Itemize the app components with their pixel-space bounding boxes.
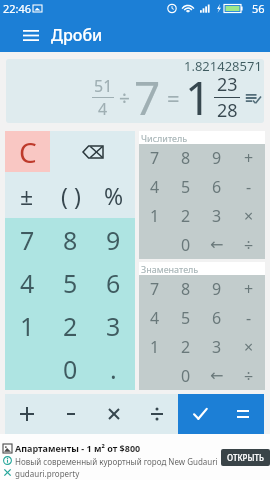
staticText: +	[244, 278, 254, 300]
staticText: 3	[106, 309, 121, 343]
button[interactable]: 2	[170, 201, 201, 230]
button[interactable]: Equals	[221, 394, 264, 434]
button[interactable]: 6	[92, 261, 135, 304]
button[interactable]: 5	[49, 261, 92, 304]
button[interactable]: 1	[139, 201, 170, 230]
staticText: 5	[181, 176, 191, 198]
staticText: +	[244, 147, 254, 169]
staticText: 9	[212, 147, 222, 169]
staticText: 7	[134, 66, 161, 123]
staticText: ÷	[244, 365, 254, 387]
staticText: ×	[244, 336, 254, 358]
button[interactable]: %	[92, 172, 135, 218]
button[interactable]: 8	[170, 144, 201, 172]
staticText: 0	[181, 234, 191, 256]
staticText: 4	[98, 98, 108, 120]
button[interactable]: 9	[92, 218, 135, 261]
staticText: 7	[20, 223, 35, 257]
button[interactable]: C	[5, 131, 50, 172]
button[interactable]: 5	[170, 172, 201, 201]
button[interactable]: +	[233, 275, 265, 303]
button[interactable]: 3	[92, 304, 135, 347]
button[interactable]: +	[233, 144, 265, 172]
staticText: 5	[63, 266, 78, 300]
button[interactable]: 9	[201, 144, 233, 172]
button[interactable]: 6	[201, 172, 233, 201]
staticText: -	[246, 176, 252, 198]
button[interactable]: div	[135, 394, 178, 434]
staticText: 6	[212, 176, 222, 198]
button[interactable]: Apply	[178, 394, 221, 434]
button[interactable]: ÷	[233, 361, 265, 390]
staticText: Апартаменты - 1 м² от $800	[15, 442, 141, 454]
button[interactable]: ×	[233, 332, 265, 361]
button[interactable]: ±	[5, 172, 49, 218]
button[interactable]: 4	[139, 172, 170, 201]
button[interactable]: ×	[233, 201, 265, 230]
button[interactable]: ÷	[233, 230, 265, 259]
staticText: ×	[244, 205, 254, 227]
staticText: 0	[63, 352, 78, 386]
button[interactable]: 2	[170, 332, 201, 361]
staticText: ÷	[119, 85, 130, 111]
button[interactable]: Menu	[18, 22, 44, 48]
button[interactable]: -	[233, 303, 265, 332]
button[interactable]: 0	[170, 230, 201, 259]
button[interactable]: times	[92, 394, 135, 434]
button[interactable]: 4	[5, 261, 49, 304]
button[interactable]: 8	[170, 275, 201, 303]
button[interactable]: .	[92, 347, 135, 390]
button[interactable]: 7	[139, 144, 170, 172]
staticText: C	[19, 133, 37, 171]
staticText: 2	[181, 336, 191, 358]
staticText: ←	[210, 366, 224, 385]
button[interactable]: ←	[201, 230, 233, 259]
button[interactable]: 7	[5, 218, 49, 261]
button[interactable]: 2	[49, 304, 92, 347]
staticText: gudauri.property	[15, 468, 80, 479]
staticText: ÷	[244, 234, 254, 256]
button[interactable]: ←	[201, 361, 233, 390]
staticText: ←	[210, 235, 224, 254]
button[interactable]: 6	[201, 303, 233, 332]
button[interactable]: 1	[139, 332, 170, 361]
staticText: ОТКРЫТЬ	[227, 452, 264, 463]
staticText: %	[104, 180, 124, 211]
staticText: 1.821428571	[184, 59, 262, 75]
staticText: 9	[106, 223, 121, 257]
button[interactable]: 4	[139, 303, 170, 332]
button[interactable]: 0	[170, 361, 201, 390]
staticText: 8	[181, 278, 191, 300]
button[interactable]: 8	[49, 218, 92, 261]
staticText: 1	[185, 66, 212, 123]
button[interactable]: ( )	[49, 172, 92, 218]
button[interactable]: 3	[201, 332, 233, 361]
button[interactable]: 9	[201, 275, 233, 303]
button[interactable]: Backspace	[50, 131, 135, 172]
button[interactable]: 5	[170, 303, 201, 332]
button[interactable]: minus	[49, 394, 92, 434]
staticText: Дроби	[51, 24, 103, 46]
button[interactable]: -	[233, 172, 265, 201]
staticText: Знаменатель	[141, 263, 199, 275]
staticText: Новый современный курортный город New Gu…	[15, 456, 218, 467]
staticText: 6	[212, 307, 222, 329]
staticText: 5	[181, 307, 191, 329]
staticText: 1	[150, 205, 160, 227]
staticText: 51	[94, 75, 113, 97]
staticText: 1	[150, 336, 160, 358]
button[interactable]: 0	[49, 347, 92, 390]
button[interactable]: 3	[201, 201, 233, 230]
button[interactable]: plus	[5, 394, 49, 434]
staticText: 8	[181, 147, 191, 169]
button[interactable]: 1	[5, 304, 49, 347]
staticText: 22:46	[3, 1, 32, 16]
staticText: 7	[150, 147, 160, 169]
button[interactable]: 7	[139, 275, 170, 303]
button[interactable]: ОТКРЫТЬ	[221, 449, 270, 466]
staticText: 4	[150, 176, 160, 198]
staticText: =	[167, 83, 180, 113]
